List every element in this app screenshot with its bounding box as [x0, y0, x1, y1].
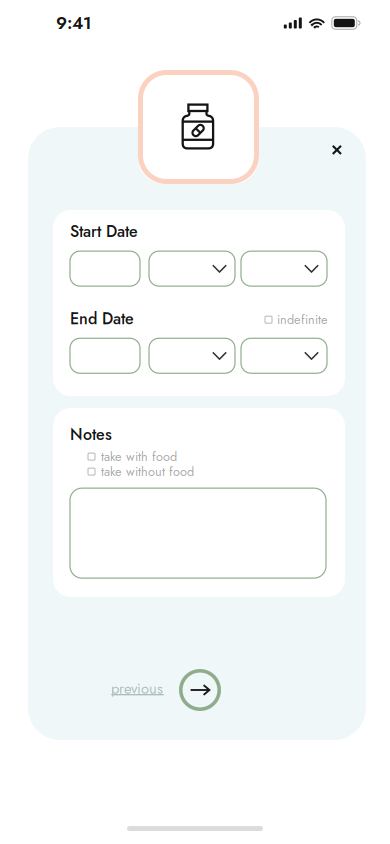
staticText: 9:41 — [56, 10, 92, 35]
staticText: Notes — [70, 423, 112, 446]
staticText: take with food — [101, 447, 177, 466]
button[interactable]: Next — [179, 669, 221, 711]
staticText: take without food — [101, 462, 194, 481]
button[interactable]: Choose — [149, 251, 235, 286]
button[interactable]: Choose — [241, 251, 327, 286]
staticText: previous — [111, 678, 163, 699]
button[interactable]: previous — [105, 670, 170, 702]
button[interactable]: Choose — [70, 251, 140, 286]
staticText: End Date — [70, 307, 134, 330]
staticText: indefinite — [277, 310, 328, 329]
button[interactable]: Choose — [70, 338, 140, 373]
button[interactable]: Choose — [241, 338, 327, 373]
button[interactable]: indefinite — [265, 310, 328, 329]
button[interactable]: Medication — [138, 70, 259, 184]
button[interactable]: Close — [321, 134, 353, 166]
button[interactable]: take with food — [88, 449, 177, 464]
staticText: Start Date — [70, 220, 138, 243]
button[interactable]: take without food — [88, 464, 194, 479]
button[interactable]: Choose — [149, 338, 235, 373]
